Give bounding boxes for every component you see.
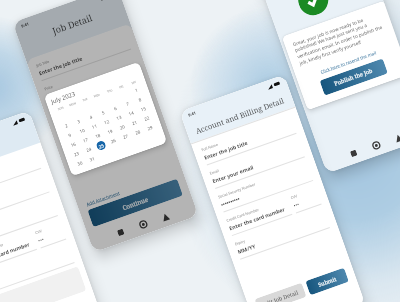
- button[interactable]: 26: [110, 137, 117, 144]
- staticText: Enter the location: [63, 125, 109, 147]
- staticText: Social Security Number: [217, 181, 257, 199]
- button[interactable]: 15: [140, 105, 148, 112]
- staticText: FRI: [119, 84, 125, 89]
- button[interactable]: 27: [122, 132, 130, 140]
- staticText: Great, your job is now ready to be publi…: [292, 11, 389, 67]
- staticText: Category: [69, 152, 85, 162]
- staticText: Continue: [121, 195, 149, 211]
- button[interactable]: 3: [76, 118, 81, 124]
- button[interactable]: Add Attachment: [85, 189, 121, 207]
- button[interactable]: 25: [95, 140, 107, 151]
- staticText: dd/mm/yyyy: [54, 106, 88, 123]
- button[interactable]: 11: [91, 122, 99, 130]
- staticText: Expiry: [234, 238, 246, 246]
- button[interactable]: 21: [131, 119, 139, 126]
- staticText: Enter the card number: [0, 240, 31, 266]
- staticText: 25: [98, 142, 106, 150]
- button[interactable]: 1: [134, 87, 139, 93]
- staticText: Enter the job title: [203, 139, 249, 161]
- button[interactable]: Home: [134, 215, 152, 233]
- staticText: 9:41: [20, 21, 30, 29]
- button[interactable]: 8: [137, 96, 142, 103]
- staticText: Job Title: [35, 58, 50, 68]
- button[interactable]: Recents: [345, 144, 363, 162]
- staticText: MM/YY: [0, 277, 1, 290]
- staticText: Date: [52, 108, 61, 115]
- staticText: 9:41: [187, 110, 197, 118]
- staticText: ••••••••••: [220, 195, 241, 208]
- staticText: Credit Card Number: [226, 207, 259, 223]
- button[interactable]: 16: [70, 140, 77, 148]
- button[interactable]: 23: [73, 150, 81, 157]
- staticText: SAT: [131, 80, 137, 85]
- button[interactable]: 29: [147, 124, 154, 131]
- staticText: Job Detail: [50, 11, 94, 36]
- staticText: •••: [37, 235, 45, 244]
- staticText: Location: [60, 129, 76, 139]
- staticText: MON: [69, 101, 77, 107]
- staticText: Enter the card number: [228, 205, 286, 231]
- button[interactable]: Recents: [112, 223, 130, 241]
- staticText: •••: [292, 200, 300, 209]
- button[interactable]: 6: [113, 105, 118, 111]
- staticText: THU: [106, 88, 113, 94]
- staticText: WED: [93, 92, 101, 98]
- button[interactable]: 30: [76, 159, 84, 167]
- button[interactable]: 20: [119, 123, 126, 131]
- staticText: Credit Card Number: [0, 242, 4, 258]
- staticText: Edit Job Detail: [261, 288, 300, 302]
- button[interactable]: 31: [89, 155, 96, 162]
- button[interactable]: 24: [85, 145, 93, 153]
- staticText: 00.00 €: [46, 87, 65, 100]
- button[interactable]: Edit Job Detail: [254, 283, 306, 302]
- button[interactable]: Back: [156, 208, 174, 226]
- staticText: Enter the job title: [38, 54, 83, 76]
- button[interactable]: 22: [143, 114, 151, 122]
- staticText: Price: [44, 84, 54, 91]
- button[interactable]: 4: [88, 113, 93, 120]
- button[interactable]: 28: [134, 128, 142, 136]
- staticText: Email: [209, 168, 220, 176]
- button[interactable]: 13: [115, 113, 123, 121]
- staticText: Select a category: [71, 149, 116, 171]
- button[interactable]: Home: [367, 136, 385, 154]
- staticText: Enter your email: [211, 163, 254, 184]
- staticText: SUN: [57, 105, 64, 111]
- button[interactable]: 14: [128, 109, 135, 117]
- button[interactable]: 12: [103, 118, 111, 125]
- button[interactable]: Continue: [87, 179, 183, 227]
- staticText: Publish the Job: [333, 66, 374, 88]
- staticText: CVV: [290, 193, 298, 200]
- staticText: July 2023: [50, 90, 77, 106]
- staticText: MM/YY: [236, 242, 257, 255]
- button[interactable]: Publish the Job: [319, 58, 388, 96]
- button[interactable]: 19: [106, 127, 114, 135]
- staticText: Account and Billing Detail: [194, 95, 285, 136]
- button[interactable]: 10: [79, 126, 86, 134]
- button[interactable]: 2: [64, 122, 69, 129]
- button[interactable]: 7: [125, 100, 130, 107]
- button[interactable]: 17: [82, 136, 90, 144]
- staticText: Submit: [317, 275, 337, 288]
- staticText: CVV: [34, 228, 43, 235]
- button[interactable]: Back: [389, 129, 400, 147]
- button[interactable]: 5: [101, 109, 105, 116]
- staticText: Full Name: [201, 141, 219, 152]
- button[interactable]: Submit: [305, 268, 349, 295]
- button[interactable]: 9: [67, 131, 72, 138]
- button[interactable]: Click here to resend the mail: [320, 49, 377, 75]
- staticText: TUE: [82, 97, 89, 102]
- button[interactable]: 18: [94, 132, 102, 139]
